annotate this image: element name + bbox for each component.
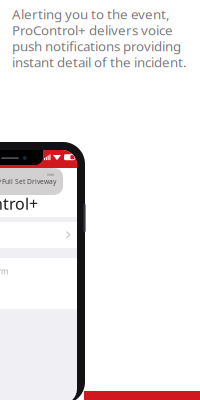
- button[interactable]: Notification: 9:12 Full Set Driveway: [0, 168, 63, 195]
- staticText: 9:12 *Full Set Driveway: [0, 177, 56, 186]
- staticText: Alarm: [0, 266, 8, 277]
- staticText: Alerting you to the event,: [12, 5, 170, 23]
- button[interactable]: Alarm: [0, 258, 77, 309]
- staticText: push notifications providing: [12, 37, 181, 55]
- staticText: ProControl+: [0, 193, 38, 214]
- button[interactable]: Open zone detail: [0, 222, 77, 248]
- staticText: instant detail of the incident.: [12, 53, 187, 71]
- staticText: ProControl+ delivers voice: [12, 21, 173, 39]
- staticText: now: [47, 171, 54, 177]
